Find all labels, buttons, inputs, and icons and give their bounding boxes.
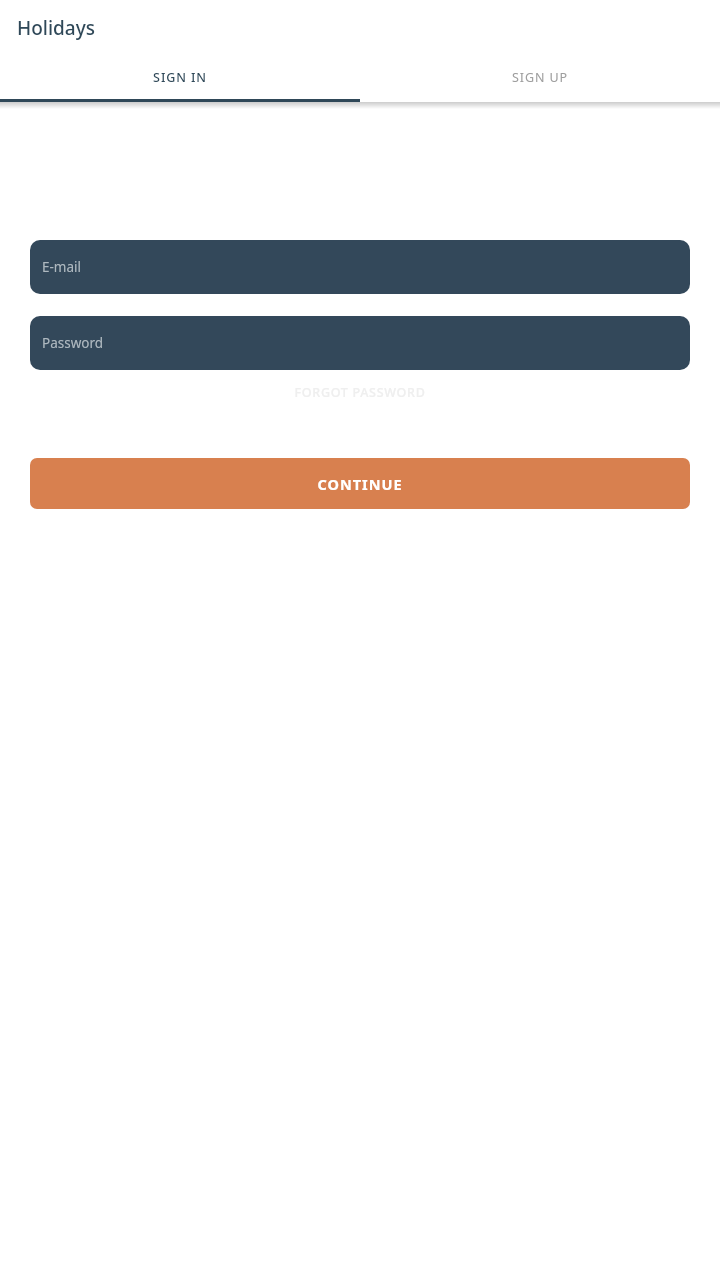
button[interactable]: SIGN UP bbox=[360, 56, 720, 99]
staticText: SIGN UP bbox=[512, 69, 568, 86]
button[interactable]: Password bbox=[30, 316, 690, 370]
staticText: CONTINUE bbox=[317, 474, 403, 494]
button[interactable]: CONTINUE bbox=[30, 458, 690, 509]
staticText: Holidays bbox=[17, 15, 95, 41]
staticText: SIGN IN bbox=[153, 69, 207, 86]
button[interactable]: FORGOT PASSWORD bbox=[286, 380, 434, 405]
staticText: FORGOT PASSWORD bbox=[294, 384, 426, 401]
button[interactable]: E-mail bbox=[30, 240, 690, 294]
button[interactable]: SIGN IN bbox=[0, 56, 360, 99]
staticText: E-mail bbox=[42, 258, 82, 276]
staticText: Password bbox=[42, 334, 104, 352]
